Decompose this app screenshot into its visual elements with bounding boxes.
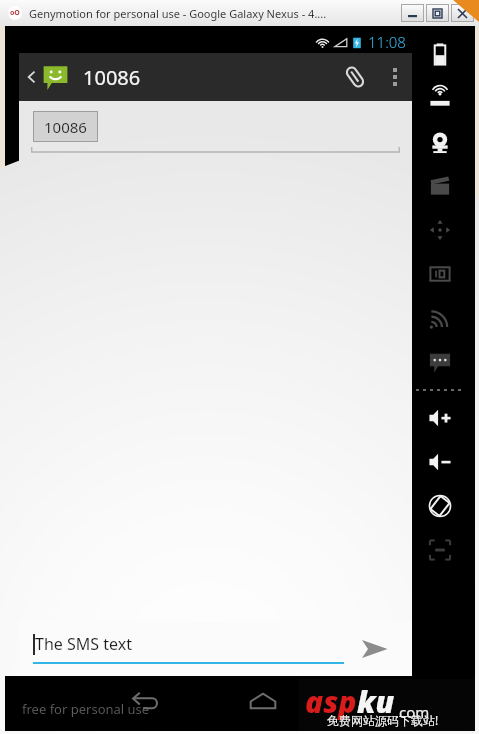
staticText: Genymotion for personal use - Google Gal… — [29, 6, 327, 21]
button[interactable]: Network — [418, 296, 462, 340]
button[interactable]: close — [451, 4, 474, 22]
staticText: 10086 — [44, 117, 87, 137]
button[interactable]: One to one — [418, 528, 462, 572]
button[interactable]: More options — [378, 53, 412, 101]
button[interactable]: SMS — [418, 340, 462, 384]
button[interactable]: Attach — [332, 53, 378, 101]
button[interactable]: Camera — [418, 120, 462, 164]
staticText: ku — [357, 681, 395, 722]
button[interactable]: Home — [235, 676, 291, 728]
staticText: oO — [10, 8, 20, 18]
button[interactable]: D-pad — [418, 208, 462, 252]
staticText: 免费网站源码下载站! — [327, 712, 439, 728]
staticText: free for personal use — [22, 700, 150, 718]
button[interactable]: Send — [344, 621, 404, 676]
button[interactable]: 10086 — [33, 111, 398, 142]
button[interactable]: Back — [117, 676, 173, 728]
staticText: asp — [305, 681, 357, 722]
staticText: 11:08 — [368, 32, 406, 52]
button[interactable]: Identifiers — [418, 252, 462, 296]
button[interactable]: Video — [418, 164, 462, 208]
staticText: 10086 — [83, 64, 141, 91]
button[interactable]: max — [426, 4, 449, 22]
button[interactable]: Volume up — [418, 396, 462, 440]
button[interactable]: Volume down — [418, 440, 462, 484]
button[interactable]: Battery — [418, 32, 462, 76]
button[interactable]: GPS — [418, 76, 462, 120]
button[interactable]: Navigate up — [19, 53, 75, 101]
staticText: .com — [395, 702, 430, 722]
button[interactable]: The SMS text — [33, 633, 344, 664]
button[interactable]: min — [401, 4, 424, 22]
button[interactable]: Rotate — [418, 484, 462, 528]
staticText: The SMS text — [35, 633, 132, 655]
